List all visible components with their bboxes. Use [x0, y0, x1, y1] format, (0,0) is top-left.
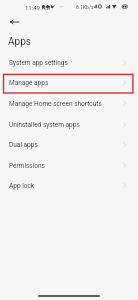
staticText: 11:49 AM — [25, 4, 51, 11]
staticText: Manage Home screen shortcuts — [9, 100, 102, 108]
button[interactable]: Permissions — [0, 155, 138, 176]
button[interactable]: Manage Home screen shortcuts — [0, 93, 138, 114]
staticText: Uninstalled system apps — [9, 121, 80, 129]
button[interactable]: Dual apps — [0, 134, 138, 155]
staticText: App lock — [9, 182, 35, 190]
staticText: Apps — [8, 36, 31, 48]
button[interactable]: Uninstalled system apps — [0, 114, 138, 135]
staticText: System app settings — [9, 59, 68, 67]
staticText: Manage apps — [9, 79, 49, 87]
button[interactable]: Back — [4, 12, 26, 31]
button[interactable]: System app settings — [0, 52, 138, 73]
staticText: Dual apps — [9, 141, 38, 149]
button[interactable]: Manage apps — [0, 72, 138, 93]
staticText: 8.1Kb/s — [76, 4, 94, 10]
button[interactable]: App lock — [0, 175, 138, 196]
staticText: Permissions — [9, 162, 45, 170]
